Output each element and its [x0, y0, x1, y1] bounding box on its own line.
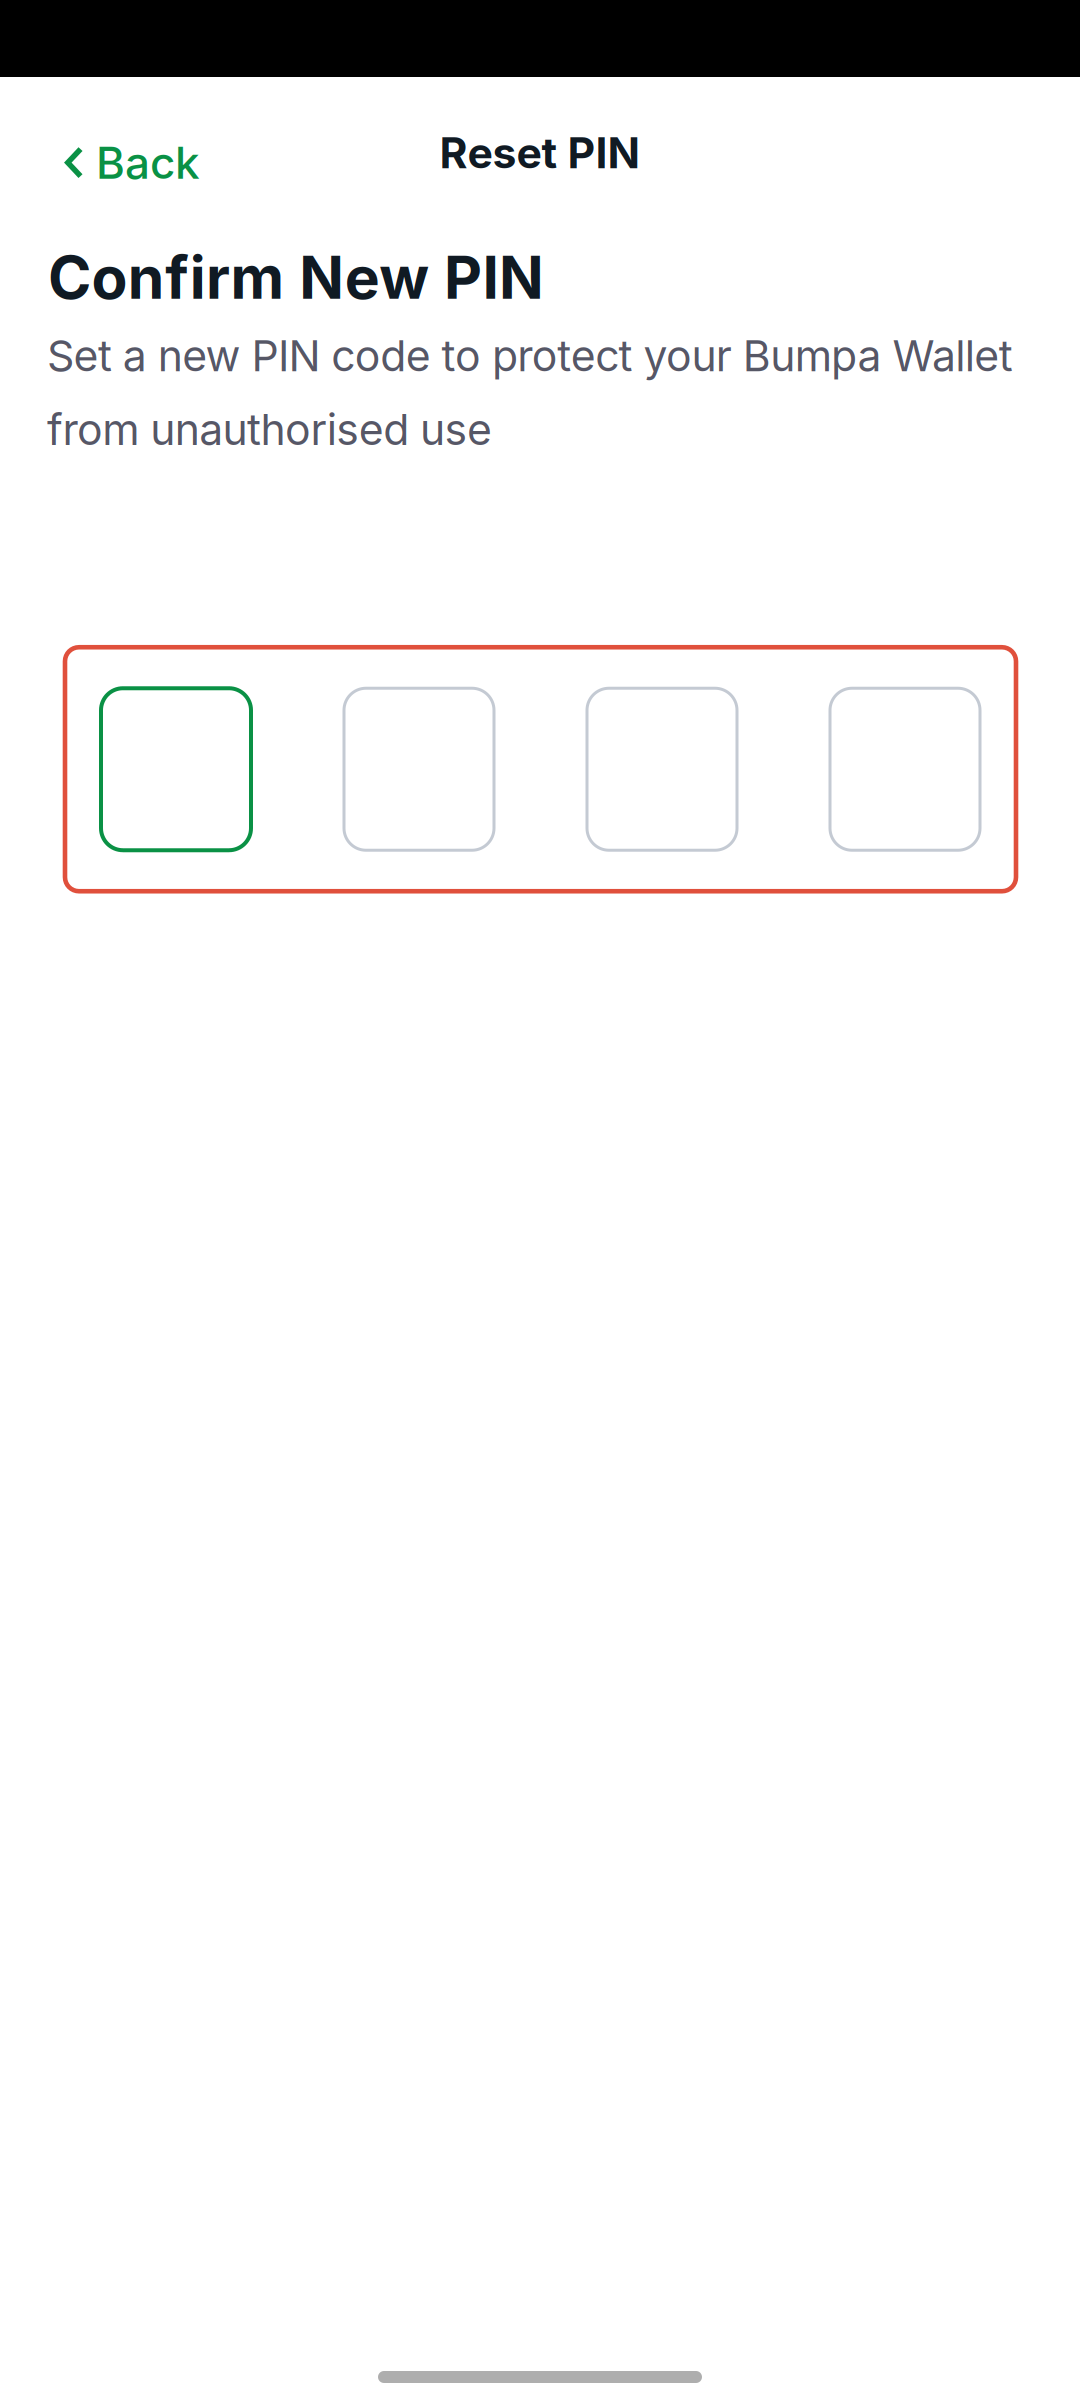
button[interactable]: PIN digit 4 [830, 688, 980, 850]
button[interactable]: PIN digit 2 [344, 688, 494, 850]
staticText: Reset PIN [439, 127, 640, 179]
button[interactable]: PIN digit 3 [587, 688, 737, 850]
staticText: Set a new PIN code to protect your Bumpa… [47, 330, 1013, 455]
staticText: Confirm New PIN [48, 242, 544, 313]
button[interactable]: PIN digit 1 [101, 688, 251, 850]
staticText: Back [96, 136, 200, 189]
button[interactable]: Back [0, 77, 234, 213]
